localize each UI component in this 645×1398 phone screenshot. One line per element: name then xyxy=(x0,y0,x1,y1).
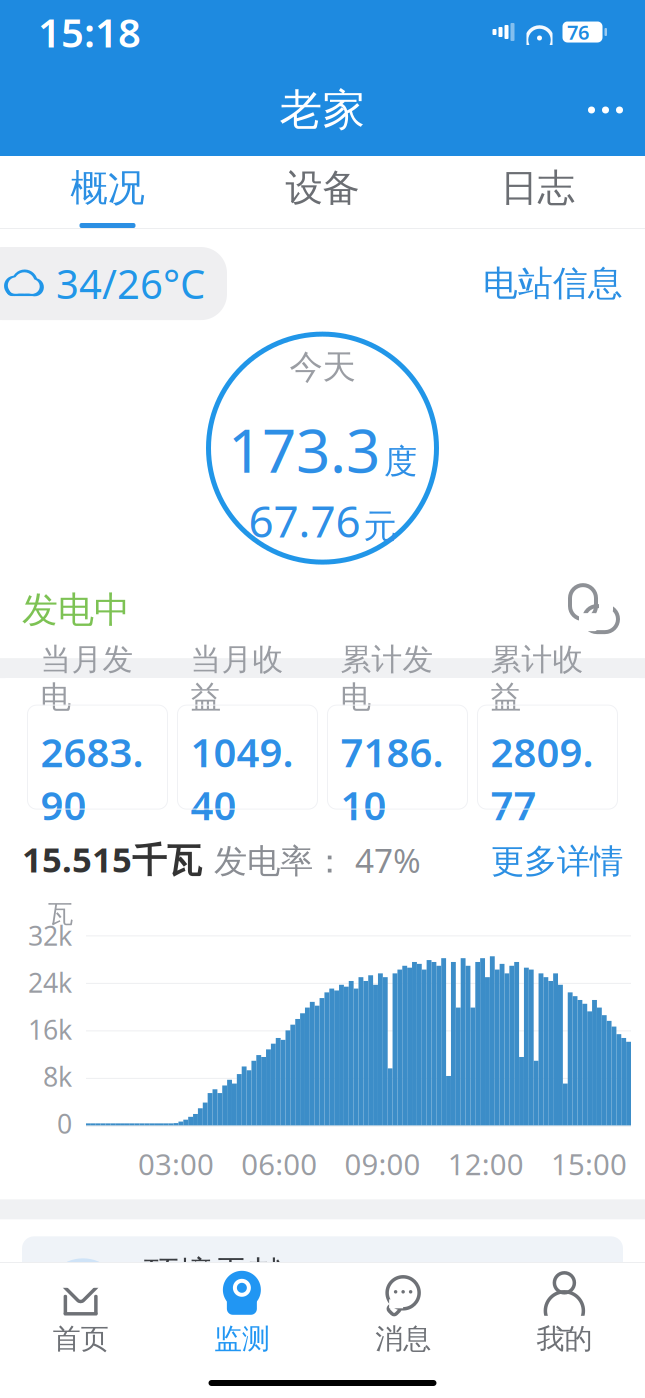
staticText: 2809.77 xyxy=(490,725,593,831)
staticText: 06:00 xyxy=(241,1144,317,1183)
staticText: 173.3 xyxy=(228,409,380,489)
staticText: 12:00 xyxy=(448,1144,524,1183)
staticText: 元 xyxy=(190,837,219,873)
staticText: 发电率： 47% xyxy=(214,838,421,882)
staticText: 累计发电 xyxy=(340,641,433,716)
staticText: 元 xyxy=(490,837,519,873)
button[interactable]: 首页 xyxy=(0,1264,161,1362)
staticText: 日志 xyxy=(500,165,574,211)
staticText: 更多详情 xyxy=(491,841,623,882)
staticText: 34/26°C xyxy=(56,257,205,310)
staticText: 概况 xyxy=(70,165,144,211)
staticText: 瓦 xyxy=(48,898,73,929)
staticText: 09:00 xyxy=(344,1144,420,1183)
button[interactable]: CO₂ xyxy=(22,1236,623,1358)
button[interactable]: 34/26°C xyxy=(0,247,227,320)
staticText: 2683.90 xyxy=(40,725,143,831)
staticText: 67.76 xyxy=(248,491,360,550)
staticText: 我的 xyxy=(536,1322,592,1356)
staticText: 电站信息 xyxy=(483,262,623,305)
button[interactable]: 日志 xyxy=(430,156,645,228)
staticText: 今天 xyxy=(289,347,355,387)
staticText: CO₂ xyxy=(66,1291,100,1316)
staticText: 0 xyxy=(57,1106,72,1141)
staticText: 度 xyxy=(340,837,369,873)
staticText: 度 xyxy=(40,837,69,873)
staticText: 累计收益 xyxy=(490,641,583,716)
staticText: 76 xyxy=(567,19,589,45)
staticText: 03:00 xyxy=(138,1144,214,1183)
staticText: 首页 xyxy=(53,1322,109,1356)
staticText: 老家 xyxy=(279,84,365,136)
staticText: 元 xyxy=(363,506,396,547)
staticText: 发电中 xyxy=(22,588,130,632)
staticText: 消息 xyxy=(375,1322,431,1356)
button[interactable]: 消息 xyxy=(322,1264,484,1362)
staticText: 度 xyxy=(384,441,417,482)
staticText: 累计减少碳排放 xyxy=(144,1301,375,1342)
staticText: 监测 xyxy=(214,1322,270,1356)
staticText: 24k xyxy=(28,965,72,1000)
staticText: 15.515千瓦 xyxy=(22,836,202,882)
staticText: 设备 xyxy=(285,165,359,211)
button[interactable]: 概况 xyxy=(0,156,215,228)
staticText: 7.16 xyxy=(487,1270,570,1325)
staticText: 吨 xyxy=(574,1288,601,1321)
button[interactable]: 我的 xyxy=(484,1264,645,1362)
button[interactable]: 监测 xyxy=(161,1264,322,1362)
staticText: 7186.10 xyxy=(340,725,443,831)
staticText: 32k xyxy=(28,918,72,953)
staticText: 当月发电 xyxy=(40,641,133,716)
button[interactable]: 更多 xyxy=(566,84,645,135)
staticText: 8k xyxy=(43,1059,72,1094)
staticText: 15:18 xyxy=(38,5,141,58)
staticText: 环境贡献 xyxy=(144,1253,284,1295)
button[interactable]: 更多详情 xyxy=(491,841,623,882)
staticText: 当月收益 xyxy=(190,641,283,716)
staticText: 1049.40 xyxy=(190,725,293,831)
button[interactable]: 设备 xyxy=(215,156,430,228)
staticText: 15:00 xyxy=(551,1144,627,1183)
button[interactable]: 电站信息 xyxy=(483,262,623,305)
button[interactable]: 拨打电话 xyxy=(559,580,625,640)
staticText: 16k xyxy=(28,1012,72,1047)
